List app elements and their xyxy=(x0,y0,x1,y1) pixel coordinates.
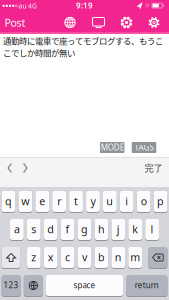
button[interactable]: j xyxy=(111,219,125,240)
staticText: h xyxy=(98,222,105,236)
button[interactable]: a xyxy=(10,219,24,240)
staticText: こでしか時間が無い xyxy=(3,46,75,59)
staticText: return xyxy=(135,280,159,290)
button[interactable]: MODE xyxy=(100,142,124,153)
button[interactable]: k xyxy=(128,219,142,240)
button[interactable]: Web preview xyxy=(64,17,76,28)
button[interactable]: 完了 xyxy=(144,163,162,174)
button[interactable]: Previous xyxy=(7,163,12,174)
button[interactable]: p xyxy=(154,191,167,212)
staticText: 4G xyxy=(28,1,37,10)
button[interactable]: Shift xyxy=(2,247,21,268)
staticText: 完了 xyxy=(144,163,162,174)
button[interactable]: w xyxy=(18,191,32,212)
staticText: e xyxy=(39,194,45,208)
button[interactable]: Next keyboard xyxy=(24,275,43,296)
staticText: l xyxy=(151,222,154,236)
button[interactable]: 123 xyxy=(2,275,21,296)
staticText: q xyxy=(5,194,12,208)
staticText: c xyxy=(65,250,70,264)
button[interactable]: y xyxy=(86,191,100,212)
button[interactable]: l xyxy=(145,219,159,240)
button[interactable]: q xyxy=(2,191,15,212)
staticText: 9:19 xyxy=(76,0,93,11)
staticText: TAGS xyxy=(134,142,153,153)
staticText: 123 xyxy=(4,280,19,290)
staticText: k xyxy=(132,222,138,236)
staticText: space xyxy=(73,280,95,290)
staticText: n xyxy=(115,250,122,264)
button[interactable]: return xyxy=(126,275,167,296)
button[interactable]: n xyxy=(111,247,125,268)
button[interactable]: i xyxy=(120,191,134,212)
button[interactable]: z xyxy=(27,247,41,268)
staticText: j xyxy=(117,222,120,236)
staticText: p xyxy=(157,194,164,208)
staticText: y xyxy=(90,194,95,208)
button[interactable]: b xyxy=(94,247,108,268)
staticText: u xyxy=(106,194,113,208)
staticText: b xyxy=(98,250,105,264)
staticText: w xyxy=(21,194,29,208)
staticText: f xyxy=(66,222,70,236)
staticText: a xyxy=(14,222,20,236)
button[interactable]: v xyxy=(78,247,91,268)
button[interactable]: t xyxy=(69,191,83,212)
staticText: v xyxy=(82,250,87,264)
staticText: s xyxy=(31,222,36,236)
button[interactable]: d xyxy=(44,219,57,240)
button[interactable]: Delete xyxy=(148,247,167,268)
button[interactable]: x xyxy=(44,247,57,268)
button[interactable]: s xyxy=(27,219,41,240)
button[interactable]: u xyxy=(103,191,117,212)
button[interactable]: m xyxy=(128,247,142,268)
staticText: g xyxy=(81,222,88,236)
button[interactable]: Preview xyxy=(92,17,105,28)
staticText: t xyxy=(74,194,78,208)
staticText: x xyxy=(48,250,54,264)
button[interactable]: r xyxy=(52,191,66,212)
staticText: i xyxy=(125,194,128,208)
button[interactable]: e xyxy=(35,191,49,212)
staticText: z xyxy=(31,250,36,264)
button[interactable]: Next xyxy=(23,163,28,174)
button[interactable]: o xyxy=(137,191,150,212)
staticText: o xyxy=(141,194,147,208)
staticText: r xyxy=(57,194,61,208)
button[interactable]: h xyxy=(95,219,108,240)
staticText: Post xyxy=(4,15,25,30)
button[interactable]: Photos xyxy=(120,16,133,29)
button[interactable]: c xyxy=(61,247,74,268)
button[interactable]: g xyxy=(78,219,91,240)
staticText: MODE xyxy=(101,142,124,153)
staticText: d xyxy=(47,222,54,236)
button[interactable]: space xyxy=(46,275,123,296)
button[interactable]: f xyxy=(61,219,74,240)
staticText: 通勤時に電車で座ってモブログする、もうこ xyxy=(3,34,163,47)
staticText: m xyxy=(130,250,140,264)
staticText: au xyxy=(18,1,26,10)
button[interactable]: TAGS xyxy=(132,142,156,153)
button[interactable]: Settings xyxy=(147,16,160,29)
